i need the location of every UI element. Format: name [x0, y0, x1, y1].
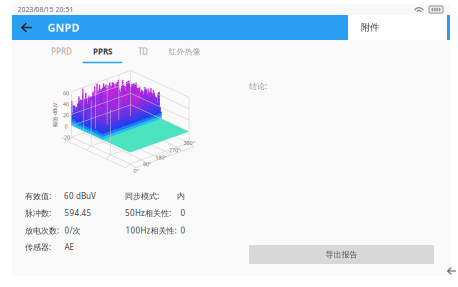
- staticText: 100Hz相关性:: [125, 225, 176, 236]
- staticText: 270°: [169, 147, 180, 154]
- button[interactable]: PPRD: [0, 0, 458, 287]
- staticText: 90°: [143, 161, 151, 168]
- staticText: 传感器:: [25, 242, 51, 252]
- staticText: 50Hz相关性:: [125, 208, 171, 218]
- staticText: -20: [62, 134, 70, 141]
- staticText: 幅值-dBuV: [43, 111, 67, 119]
- staticText: 60: [63, 90, 69, 97]
- staticText: PPRD: [51, 46, 72, 57]
- staticText: 0: [64, 123, 67, 130]
- staticText: 40: [63, 101, 69, 108]
- staticText: 内: [177, 191, 185, 201]
- staticText: 同步模式:: [125, 191, 159, 201]
- staticText: 红外热像: [168, 47, 200, 56]
- staticText: GNPD: [47, 20, 79, 35]
- staticText: 20: [63, 112, 69, 119]
- staticText: 60 dBuV: [64, 191, 96, 201]
- staticText: 0: [180, 208, 185, 218]
- staticText: 360°: [183, 139, 194, 147]
- staticText: 导出报告: [325, 250, 357, 259]
- button[interactable]: 附件: [348, 15, 447, 40]
- staticText: 0: [180, 225, 185, 236]
- staticText: 放电次数:: [25, 225, 59, 236]
- staticText: 脉冲数:: [25, 208, 51, 218]
- button[interactable]: 红外热像: [0, 0, 458, 287]
- staticText: 2023/08/15 20:51: [17, 5, 73, 14]
- staticText: 附件: [361, 22, 379, 33]
- staticText: AE: [64, 242, 73, 252]
- staticText: 0°: [133, 167, 138, 174]
- staticText: 0/次: [64, 225, 80, 236]
- staticText: 有效值:: [25, 191, 51, 201]
- staticText: 结论:: [249, 81, 267, 91]
- staticText: PPRS: [93, 46, 112, 57]
- button[interactable]: Back: [14, 15, 40, 40]
- button[interactable]: PPRS: [0, 0, 458, 287]
- button[interactable]: TD: [0, 0, 458, 287]
- staticText: 180°: [155, 154, 166, 161]
- staticText: 594.45: [64, 208, 91, 218]
- button[interactable]: 导出报告: [249, 245, 434, 264]
- staticText: TD: [138, 46, 148, 57]
